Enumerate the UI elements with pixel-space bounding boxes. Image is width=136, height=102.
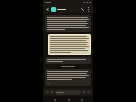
button[interactable]: Emoji [82, 90, 86, 94]
button[interactable] [45, 57, 91, 64]
button[interactable]: Camera [50, 90, 54, 94]
button[interactable]: Back [45, 7, 50, 12]
button[interactable] [55, 90, 81, 95]
button[interactable]: Home [66, 97, 71, 102]
button[interactable] [45, 69, 91, 86]
button[interactable]: Call [79, 6, 85, 12]
button[interactable] [45, 15, 91, 32]
button[interactable]: Add attachment [45, 90, 49, 94]
button[interactable]: Back [79, 97, 84, 102]
button[interactable] [51, 6, 79, 13]
button[interactable]: More options [85, 6, 91, 12]
button[interactable]: Recent apps [52, 97, 57, 102]
button[interactable]: Send [87, 90, 91, 94]
button[interactable] [48, 34, 91, 55]
